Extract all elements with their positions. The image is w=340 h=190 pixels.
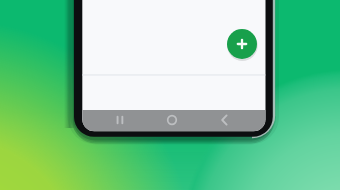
button[interactable] <box>108 108 132 132</box>
button[interactable] <box>212 108 236 132</box>
button[interactable] <box>227 29 257 59</box>
button[interactable] <box>160 108 184 132</box>
